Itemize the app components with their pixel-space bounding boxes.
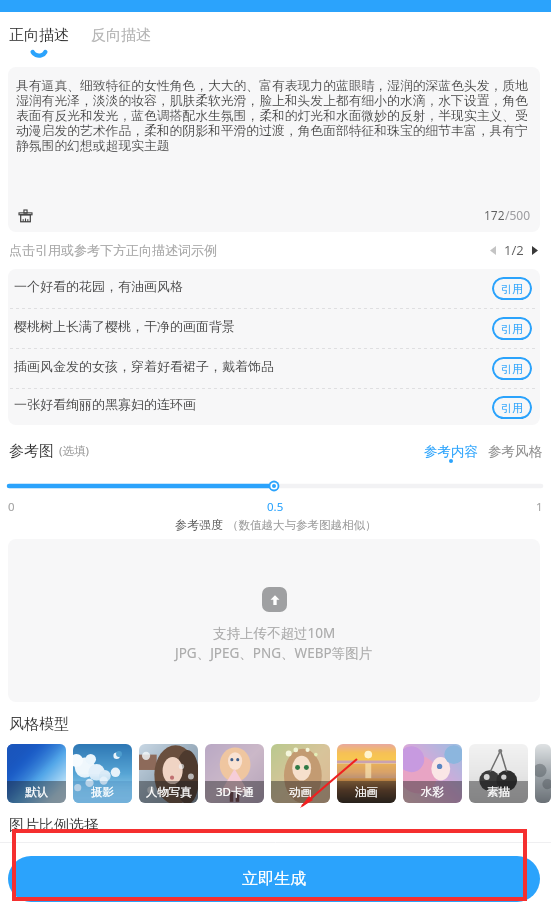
- staticText: 水彩: [421, 785, 444, 799]
- staticText: 人物写真: [146, 785, 192, 799]
- staticText: 0: [8, 499, 15, 515]
- button[interactable]: 立即生成: [8, 856, 540, 902]
- button[interactable]: 正向描述: [9, 26, 69, 56]
- button[interactable]: 反向描述: [91, 26, 151, 45]
- staticText: 反向描述: [91, 26, 151, 45]
- staticText: 支持上传不超过10M: [213, 624, 336, 642]
- staticText: 油画: [355, 785, 378, 799]
- staticText: 引用: [501, 282, 523, 296]
- staticText: 素描: [487, 785, 510, 799]
- button[interactable]: 引用: [492, 396, 532, 419]
- button[interactable]: 动画: [271, 744, 330, 803]
- button[interactable]: 参考风格: [488, 443, 542, 460]
- staticText: 默认: [25, 785, 48, 799]
- button[interactable]: Style: [535, 744, 551, 803]
- staticText: 点击引用或参考下方正向描述词示例: [9, 242, 217, 258]
- staticText: 引用: [501, 322, 523, 336]
- button[interactable]: 一张好看绚丽的黑寡妇的连环画: [8, 389, 540, 425]
- staticText: 摄影: [91, 785, 114, 799]
- staticText: 1: [536, 499, 543, 515]
- staticText: 0.5: [267, 499, 284, 515]
- button[interactable]: 引用: [492, 277, 532, 300]
- button[interactable]: 参考内容: [424, 443, 478, 460]
- staticText: 插画风金发的女孩，穿着好看裙子，戴着饰品: [14, 358, 492, 374]
- staticText: (选填): [59, 443, 89, 459]
- staticText: 参考图: [9, 442, 54, 461]
- staticText: 立即生成: [242, 869, 306, 889]
- staticText: 图片比例选择: [9, 816, 99, 835]
- staticText: JPG、JPEG、PNG、WEBP等图片: [175, 644, 373, 662]
- staticText: 参考内容: [424, 443, 478, 460]
- staticText: /500: [505, 207, 531, 223]
- staticText: 参考风格: [488, 443, 542, 460]
- staticText: 参考强度: [175, 517, 223, 532]
- staticText: 引用: [501, 362, 523, 376]
- staticText: 一张好看绚丽的黑寡妇的连环画: [14, 396, 492, 412]
- staticText: 3D卡通: [216, 784, 254, 800]
- staticText: 正向描述: [9, 26, 69, 45]
- button[interactable]: 水彩: [403, 744, 462, 803]
- staticText: 一个好看的花园，有油画风格: [14, 278, 492, 294]
- staticText: 樱桃树上长满了樱桃，干净的画面背景: [14, 318, 492, 334]
- button[interactable]: Upload image: [8, 539, 540, 702]
- button[interactable]: 默认: [7, 744, 66, 803]
- staticText: 1/2: [504, 241, 524, 259]
- button[interactable]: 引用: [492, 357, 532, 380]
- button[interactable]: 3D卡通: [205, 744, 264, 803]
- staticText: 具有逼真、细致特征的女性角色，大大的、富有表现力的蓝眼睛，湿润的深蓝色头发，质地…: [16, 78, 540, 154]
- button[interactable]: 人物写真: [139, 744, 198, 803]
- button[interactable]: 一个好看的花园，有油画风格: [8, 269, 540, 308]
- staticText: 引用: [501, 401, 523, 415]
- button[interactable]: 摄影: [73, 744, 132, 803]
- button[interactable]: 樱桃树上长满了樱桃，干净的画面背景: [8, 309, 540, 348]
- staticText: 风格模型: [9, 715, 69, 734]
- button[interactable]: Previous page: [485, 242, 501, 258]
- button[interactable]: 素描: [469, 744, 528, 803]
- staticText: 172: [484, 207, 505, 223]
- button[interactable]: 油画: [337, 744, 396, 803]
- button[interactable]: Next page: [527, 242, 543, 258]
- staticText: 动画: [289, 785, 312, 799]
- button[interactable]: 引用: [492, 317, 532, 340]
- button[interactable]: Clear text: [17, 208, 33, 224]
- button[interactable]: 插画风金发的女孩，穿着好看裙子，戴着饰品: [8, 349, 540, 388]
- staticText: （数值越大与参考图越相似）: [227, 518, 377, 532]
